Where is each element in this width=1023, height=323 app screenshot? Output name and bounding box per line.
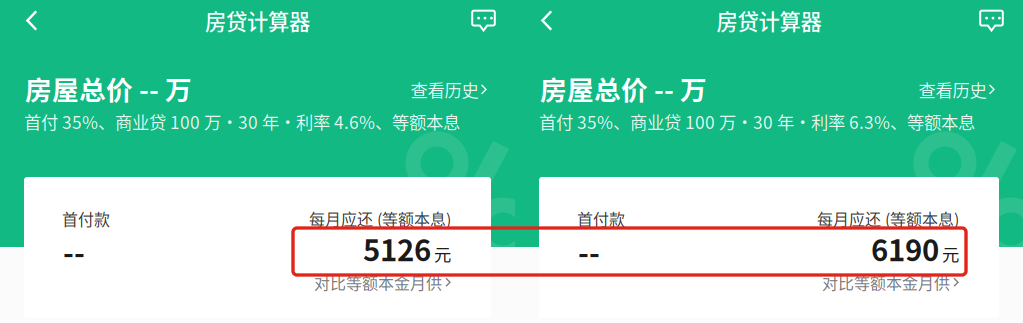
staticText: 查看历史 [918, 77, 986, 102]
button[interactable]: Customer service [457, 0, 515, 42]
button[interactable]: Back [0, 0, 52, 42]
staticText: -- [63, 230, 85, 272]
staticText: 查看历史 [410, 77, 478, 102]
button[interactable]: 查看历史 [410, 80, 487, 105]
staticText: 房贷计算器 [205, 5, 310, 36]
button[interactable]: 对比等额本金月供 [314, 271, 451, 294]
staticText: 每月应还 (等额本息) [817, 207, 959, 230]
staticText: 对比等额本金月供 [314, 271, 442, 294]
staticText: 房屋总价 -- 万 [540, 69, 707, 108]
staticText: 6190 [871, 227, 939, 270]
staticText: 5126 [363, 227, 431, 270]
staticText: 首付 35%、商业贷 100 万·30 年·利率 6.3%、等额本息 [539, 109, 975, 134]
staticText: 每月应还 (等额本息) [309, 207, 451, 230]
button[interactable]: 对比等额本金月供 [822, 271, 959, 294]
staticText: 对比等额本金月供 [822, 271, 950, 294]
button[interactable]: Back [515, 0, 567, 42]
staticText: 房屋总价 -- 万 [25, 69, 192, 108]
staticText: 元 [942, 241, 959, 266]
staticText: 首付款 [62, 207, 110, 230]
staticText: 房贷计算器 [716, 5, 821, 36]
staticText: 首付 35%、商业贷 100 万·30 年·利率 4.6%、等额本息 [24, 109, 460, 134]
button[interactable]: 查看历史 [918, 80, 995, 105]
staticText: 首付款 [577, 207, 625, 230]
button[interactable]: Customer service [965, 0, 1023, 42]
staticText: 元 [434, 241, 451, 266]
staticText: -- [578, 230, 600, 272]
